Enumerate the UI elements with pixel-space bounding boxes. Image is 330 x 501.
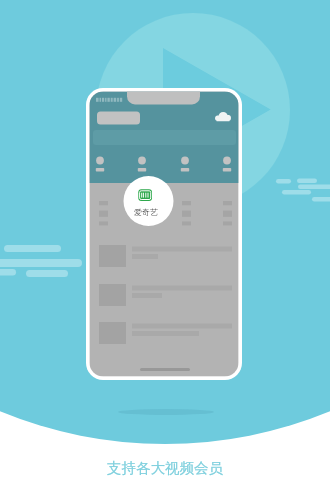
staticText: 支持各大视频会员 (107, 459, 223, 477)
staticText: 爱奇艺 (134, 207, 158, 217)
other: iQiyi app (0, 0, 330, 501)
